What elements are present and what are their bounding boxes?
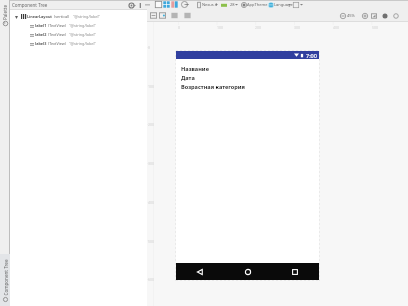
staticText: 28 (230, 2, 235, 7)
staticText: label1 (35, 23, 47, 28)
staticText: 200 (255, 25, 262, 30)
button[interactable]: Design and blueprint (170, 0, 179, 9)
button[interactable]: Layout variants (292, 0, 300, 9)
button[interactable]: Align (170, 9, 179, 22)
button[interactable]: Show constraints (149, 9, 158, 22)
button[interactable]: Device (195, 0, 203, 9)
button[interactable]: label1 (10, 21, 147, 30)
staticText: (TextView) (48, 41, 66, 46)
staticText: 400 (333, 25, 340, 30)
button[interactable]: Palette (0, 9, 13, 15)
staticText: 600 (148, 277, 155, 282)
button[interactable]: label2 (10, 30, 147, 39)
staticText: 300 (148, 161, 155, 166)
button[interactable]: LinearLayout (10, 12, 147, 21)
button[interactable]: Theme (240, 0, 248, 9)
button[interactable]: Orientation (180, 0, 189, 9)
staticText: 400 (148, 200, 155, 205)
staticText: label2 (35, 32, 47, 37)
button[interactable] (0, 254, 10, 306)
staticText: "@string/label" (69, 41, 96, 46)
staticText: Nexus 4 (202, 2, 218, 7)
staticText: 100 (217, 25, 224, 30)
button[interactable]: Blueprint (162, 0, 171, 9)
staticText: "@string/label" (69, 32, 96, 37)
button[interactable]: Zoom out (339, 9, 347, 22)
staticText: 0 (148, 45, 151, 50)
button[interactable]: Recents (288, 265, 302, 279)
staticText: 45% (347, 13, 355, 18)
staticText: 300 (294, 25, 301, 30)
staticText: 7:00 (306, 52, 317, 59)
button[interactable]: Collapse (143, 0, 152, 9)
button[interactable]: Zoom to fit (370, 9, 378, 22)
staticText: Название (181, 65, 209, 73)
button[interactable]: Language (267, 0, 275, 9)
button[interactable]: Back (193, 265, 207, 279)
staticText: (TextView) (48, 23, 66, 28)
button[interactable]: Settings (128, 0, 134, 10)
staticText: (vertical) (54, 14, 70, 19)
staticText: 200 (148, 122, 155, 127)
staticText: Возрастная категория (181, 83, 245, 91)
staticText: 0 (178, 25, 181, 30)
staticText: Дата (181, 74, 195, 82)
button[interactable]: Pan (381, 9, 389, 22)
staticText: 500 (372, 25, 379, 30)
staticText: 100 (148, 84, 155, 89)
button[interactable]: Turn on autoconnect (158, 9, 167, 22)
staticText: AppTheme (247, 2, 268, 7)
button[interactable]: Zoom in (361, 9, 369, 22)
button[interactable]: API level (220, 0, 228, 9)
button[interactable]: Guidelines (183, 9, 192, 22)
staticText: Component Tree (12, 2, 48, 8)
staticText: Palette (2, 4, 8, 20)
staticText: 500 (148, 239, 155, 244)
button[interactable]: Design surface (154, 0, 163, 9)
button[interactable]: Issue notifications (392, 9, 400, 22)
button[interactable]: Collapse (132, 0, 137, 10)
staticText: "@string/label" (73, 14, 100, 19)
staticText: label3 (35, 41, 47, 46)
staticText: Language (274, 2, 293, 7)
button[interactable]: Hide (137, 0, 143, 10)
button[interactable]: Home (241, 265, 255, 279)
staticText: Component Tree (2, 258, 8, 295)
button[interactable]: label3 (10, 39, 147, 48)
staticText: LinearLayout (27, 14, 53, 19)
staticText: "@string/label" (69, 23, 96, 28)
staticText: (TextView) (48, 32, 66, 37)
